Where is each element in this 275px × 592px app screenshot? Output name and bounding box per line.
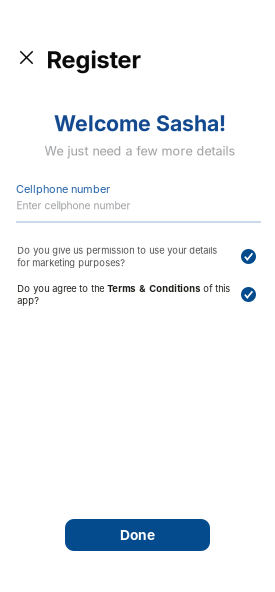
staticText: Do you give us permission to use your de… xyxy=(17,245,217,268)
staticText: Cellphone number xyxy=(16,182,110,196)
button[interactable]: Marketing consent xyxy=(241,249,256,264)
staticText: Enter cellphone number xyxy=(16,199,130,212)
staticText: Welcome Sasha! xyxy=(54,111,226,136)
staticText: Done xyxy=(120,527,155,543)
button[interactable]: Done xyxy=(65,519,210,551)
button[interactable]: Terms consent xyxy=(241,287,256,302)
staticText: Register xyxy=(46,45,140,74)
staticText: We just need a few more details xyxy=(44,143,235,159)
staticText: Do you agree to the Terms & Conditions o… xyxy=(17,283,230,306)
button[interactable]: Close xyxy=(11,42,41,72)
